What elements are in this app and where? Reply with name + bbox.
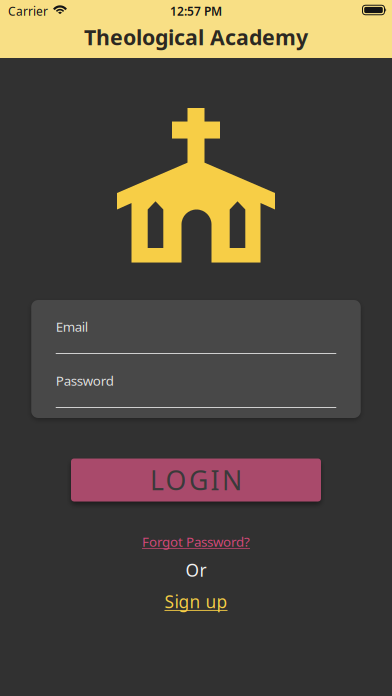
button[interactable]: Email text field bbox=[56, 300, 336, 354]
staticText: Sign up bbox=[164, 590, 227, 613]
staticText: Email bbox=[56, 318, 88, 335]
staticText: Or bbox=[185, 558, 206, 581]
button[interactable]: Sign up bbox=[164, 590, 227, 612]
staticText: LOGIN bbox=[150, 462, 242, 498]
staticText: 12:57 PM bbox=[170, 3, 222, 19]
staticText: Forgot Password? bbox=[142, 533, 250, 550]
button[interactable]: Forgot Password? bbox=[142, 531, 250, 551]
button[interactable]: LOGIN bbox=[71, 458, 321, 501]
staticText: Password bbox=[56, 372, 114, 389]
staticText: Carrier bbox=[8, 3, 48, 19]
button[interactable]: Password text field bbox=[56, 354, 336, 408]
staticText: Theological Academy bbox=[84, 23, 308, 51]
